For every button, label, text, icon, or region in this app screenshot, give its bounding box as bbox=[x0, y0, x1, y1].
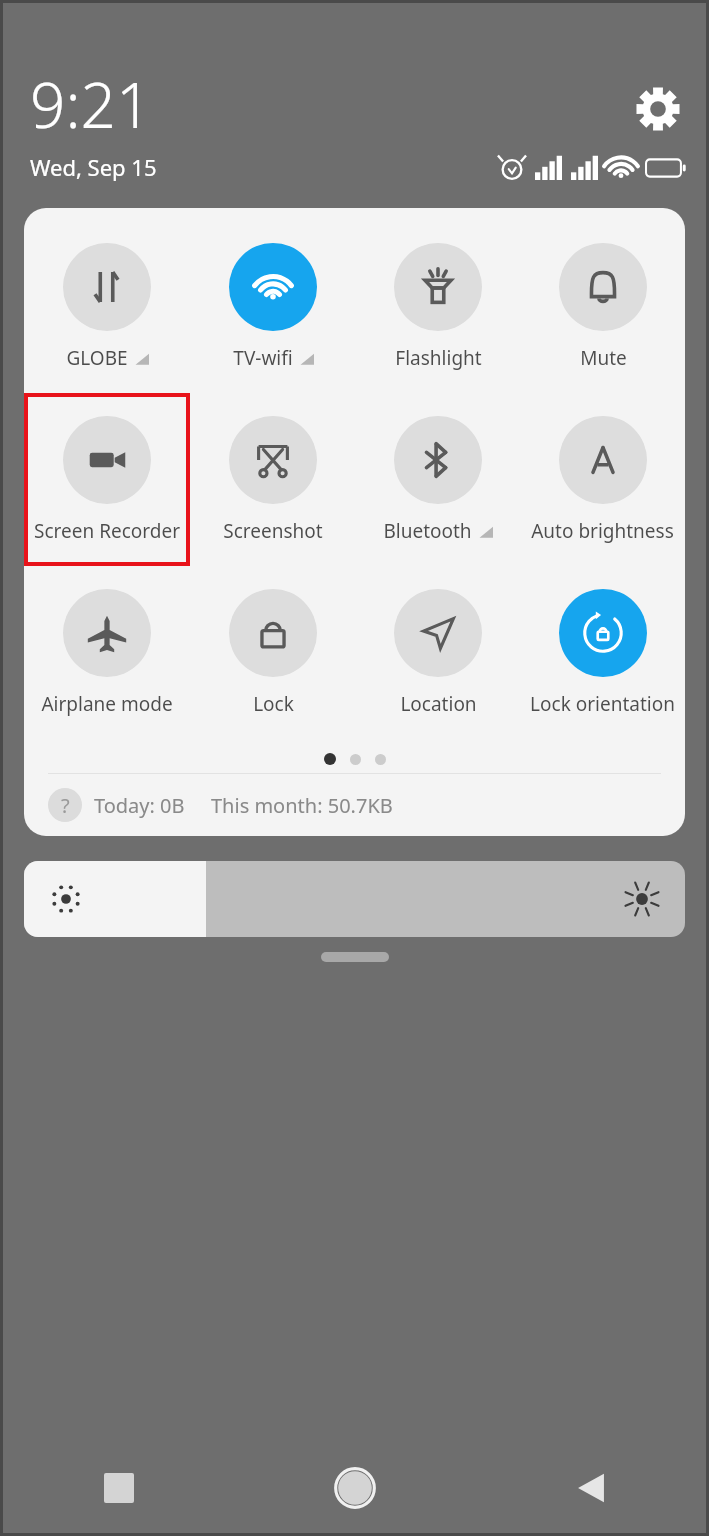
button[interactable]: Lock bbox=[190, 566, 355, 739]
staticText: This month: 50.7KB bbox=[211, 792, 393, 819]
staticText: Bluetooth bbox=[383, 518, 472, 544]
button[interactable]: GLOBE bbox=[24, 220, 190, 393]
staticText: Flashlight bbox=[395, 345, 482, 371]
staticText: Lock orientation bbox=[530, 691, 675, 717]
button[interactable]: Home bbox=[237, 1440, 473, 1536]
button[interactable] bbox=[24, 861, 685, 937]
staticText: Screen Recorder bbox=[34, 518, 180, 544]
button[interactable]: Recents bbox=[0, 1440, 237, 1536]
staticText: TV-wifi bbox=[233, 345, 293, 371]
button[interactable]: Back bbox=[473, 1440, 709, 1536]
button[interactable]: Screenshot bbox=[190, 393, 355, 566]
button[interactable]: Flashlight bbox=[355, 220, 520, 393]
staticText: Mute bbox=[580, 345, 627, 371]
button[interactable]: Mute bbox=[520, 220, 685, 393]
button[interactable]: Location bbox=[355, 566, 520, 739]
button[interactable]: Settings bbox=[635, 86, 681, 132]
staticText: Wed, Sep 15 bbox=[30, 152, 157, 182]
staticText: Today: 0B bbox=[94, 792, 185, 819]
staticText: GLOBE bbox=[66, 345, 128, 371]
button[interactable]: Lock orientation bbox=[520, 566, 685, 739]
staticText: ? bbox=[61, 792, 70, 819]
staticText: Auto brightness bbox=[531, 518, 674, 544]
button[interactable]: TV-wifi bbox=[190, 220, 355, 393]
button[interactable]: Data usage help bbox=[48, 788, 82, 822]
staticText: Airplane mode bbox=[41, 691, 173, 717]
button[interactable]: Auto brightness bbox=[520, 393, 685, 566]
button[interactable]: Bluetooth bbox=[355, 393, 520, 566]
button[interactable]: Airplane mode bbox=[24, 566, 190, 739]
staticText: Location bbox=[400, 691, 477, 717]
staticText: Screenshot bbox=[223, 518, 323, 544]
staticText: 9:21 bbox=[30, 62, 152, 146]
staticText: Lock bbox=[253, 691, 294, 717]
button[interactable]: Screen Recorder bbox=[24, 393, 190, 566]
